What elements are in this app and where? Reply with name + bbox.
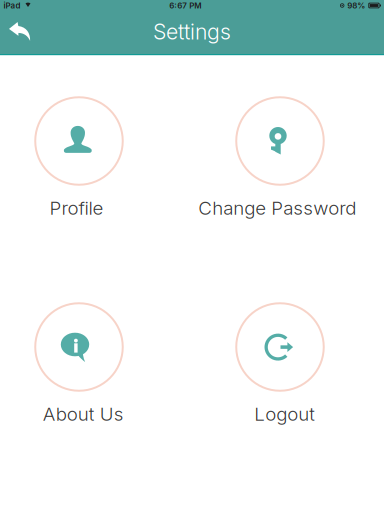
staticText: Logout — [254, 403, 315, 425]
button[interactable]: Back — [9, 22, 31, 42]
staticText: 6:67 PM — [169, 1, 201, 10]
button[interactable]: Profile — [0, 0, 384, 512]
staticText: Settings — [153, 19, 231, 45]
button[interactable]: About Us — [0, 0, 384, 512]
button[interactable]: Change Password — [0, 0, 384, 512]
staticText: iPad — [3, 1, 20, 10]
staticText: 98% — [347, 1, 365, 10]
staticText: Profile — [49, 197, 103, 219]
button[interactable]: Logout — [0, 0, 384, 512]
staticText: About Us — [43, 403, 124, 425]
staticText: Change Password — [198, 197, 356, 219]
